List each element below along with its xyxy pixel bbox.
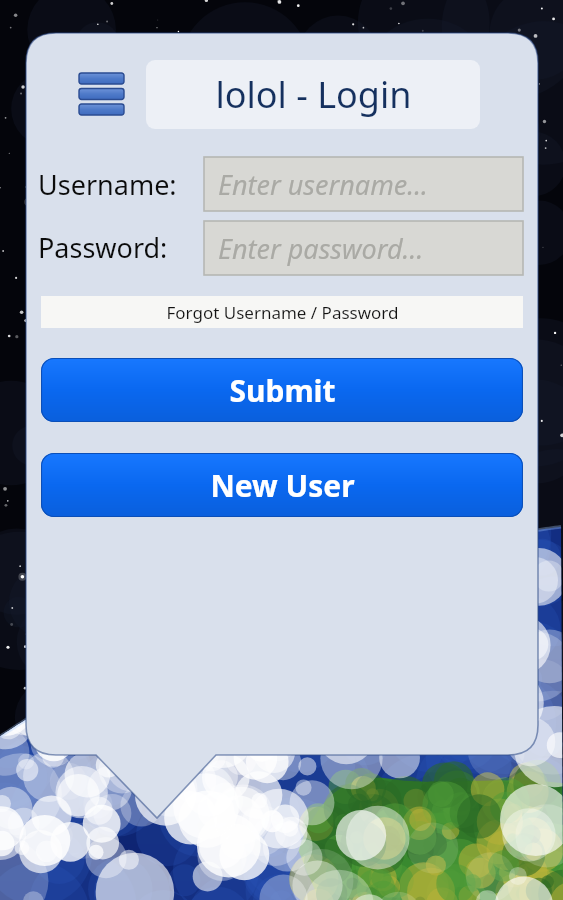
button[interactable]: Submit — [41, 358, 523, 422]
button[interactable]: Enter username... — [204, 157, 523, 211]
button[interactable]: Enter password... — [204, 221, 523, 275]
staticText: Enter password... — [218, 230, 424, 267]
staticText: Password: — [38, 229, 168, 266]
button[interactable]: Forgot Username / Password — [41, 296, 523, 328]
button[interactable]: lolol - Login — [146, 60, 480, 129]
staticText: Submit — [229, 370, 336, 411]
button[interactable]: Menu — [72, 66, 132, 122]
staticText: lolol - Login — [215, 70, 412, 119]
button[interactable]: New User — [41, 453, 523, 517]
staticText: New User — [210, 465, 355, 506]
staticText: Enter username... — [218, 166, 429, 203]
staticText: Username: — [38, 166, 177, 203]
staticText: Forgot Username / Password — [166, 301, 399, 324]
